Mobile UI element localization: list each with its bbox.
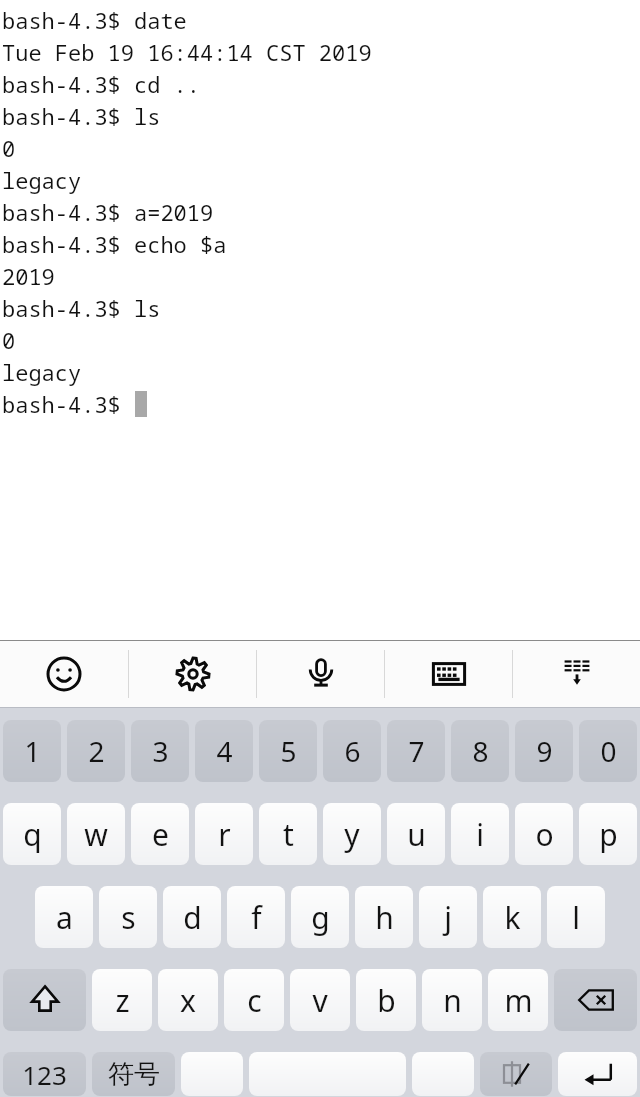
staticText: 2 — [88, 732, 105, 770]
button[interactable]: 4 — [195, 720, 253, 782]
staticText: legacy — [2, 357, 82, 387]
staticText: d — [183, 897, 202, 938]
button[interactable]: e — [131, 803, 189, 865]
button[interactable]: f — [227, 886, 285, 948]
staticText: k — [504, 897, 521, 938]
staticText: b — [377, 980, 396, 1021]
button[interactable]: k — [483, 886, 541, 948]
staticText: bash-4.3$ echo $a — [2, 229, 227, 259]
staticText: q — [23, 814, 42, 855]
staticText: j — [444, 897, 452, 938]
button[interactable]: v — [290, 969, 350, 1031]
staticText: 4 — [216, 732, 233, 770]
staticText: e — [152, 814, 169, 855]
staticText: 6 — [344, 732, 361, 770]
staticText: x — [180, 980, 196, 1021]
button[interactable]: p — [579, 803, 637, 865]
staticText: 123 — [22, 1057, 67, 1092]
button[interactable]: 2 — [67, 720, 125, 782]
button[interactable]: h — [355, 886, 413, 948]
staticText: g — [311, 897, 330, 938]
staticText: 0 — [600, 732, 617, 770]
button[interactable]: Keyboard — [385, 641, 512, 707]
staticText: p — [599, 814, 618, 855]
staticText: a — [56, 897, 73, 938]
staticText: t — [283, 814, 294, 855]
button[interactable]: 7 — [387, 720, 445, 782]
staticText: bash-4.3$ — [2, 389, 135, 419]
staticText: bash-4.3$ ls — [2, 101, 161, 131]
button[interactable]: r — [195, 803, 253, 865]
button[interactable]: 3 — [131, 720, 189, 782]
staticText: 1 — [24, 732, 41, 770]
button[interactable]: t — [259, 803, 317, 865]
button[interactable]: n — [422, 969, 482, 1031]
button[interactable]: 1 — [3, 720, 61, 782]
staticText: s — [121, 897, 136, 938]
button[interactable]: Settings — [129, 641, 256, 707]
button[interactable]: Shift — [3, 969, 86, 1031]
button[interactable] — [412, 1052, 474, 1096]
staticText: bash-4.3$ date — [2, 5, 187, 35]
staticText: i — [476, 814, 484, 855]
staticText: Tue Feb 19 16:44:14 CST 2019 — [2, 37, 372, 67]
button[interactable]: w — [67, 803, 125, 865]
button[interactable]: g — [291, 886, 349, 948]
button[interactable]: 0 — [579, 720, 637, 782]
button[interactable]: bash-4.3$ date — [0, 0, 640, 640]
staticText: h — [375, 897, 394, 938]
button[interactable] — [249, 1052, 406, 1096]
staticText: 0 — [2, 133, 16, 163]
button[interactable]: Enter — [558, 1052, 637, 1096]
button[interactable]: c — [224, 969, 284, 1031]
button[interactable] — [181, 1052, 243, 1096]
staticText: 3 — [152, 732, 169, 770]
staticText: m — [504, 980, 533, 1021]
staticText: v — [312, 980, 328, 1021]
button[interactable]: 123 — [3, 1052, 86, 1096]
staticText: r — [218, 814, 231, 855]
button[interactable]: s — [99, 886, 157, 948]
staticText: 符号 — [108, 1058, 160, 1091]
button[interactable]: Emoji — [0, 641, 128, 707]
button[interactable]: y — [323, 803, 381, 865]
staticText: u — [407, 814, 426, 855]
button[interactable]: m — [488, 969, 548, 1031]
button[interactable]: 符号 — [92, 1052, 175, 1096]
button[interactable]: Backspace — [554, 969, 637, 1031]
staticText: 2019 — [2, 261, 55, 291]
button[interactable]: d — [163, 886, 221, 948]
button[interactable]: x — [158, 969, 218, 1031]
button[interactable]: i — [451, 803, 509, 865]
button[interactable]: a — [35, 886, 93, 948]
button[interactable]: o — [515, 803, 573, 865]
staticText: 0 — [2, 325, 16, 355]
button[interactable]: 9 — [515, 720, 573, 782]
staticText: 7 — [408, 732, 425, 770]
button[interactable]: 5 — [259, 720, 317, 782]
button[interactable]: u — [387, 803, 445, 865]
button[interactable]: Hide keyboard — [513, 641, 640, 707]
staticText: 8 — [472, 732, 489, 770]
staticText: 9 — [536, 732, 553, 770]
button[interactable]: l — [547, 886, 605, 948]
staticText: legacy — [2, 165, 82, 195]
staticText: n — [443, 980, 462, 1021]
button[interactable]: z — [92, 969, 152, 1031]
staticText: f — [251, 897, 262, 938]
staticText: z — [115, 980, 130, 1021]
button[interactable]: Voice input — [257, 641, 384, 707]
staticText: o — [535, 814, 554, 855]
button[interactable]: Language — [480, 1052, 552, 1096]
button[interactable]: 6 — [323, 720, 381, 782]
staticText: bash-4.3$ ls — [2, 293, 161, 323]
button[interactable]: 8 — [451, 720, 509, 782]
staticText: c — [247, 980, 262, 1021]
button[interactable]: j — [419, 886, 477, 948]
button[interactable]: b — [356, 969, 416, 1031]
staticText: l — [572, 897, 580, 938]
staticText: y — [344, 814, 360, 855]
staticText: bash-4.3$ a=2019 — [2, 197, 214, 227]
staticText: 5 — [280, 732, 297, 770]
button[interactable]: q — [3, 803, 61, 865]
